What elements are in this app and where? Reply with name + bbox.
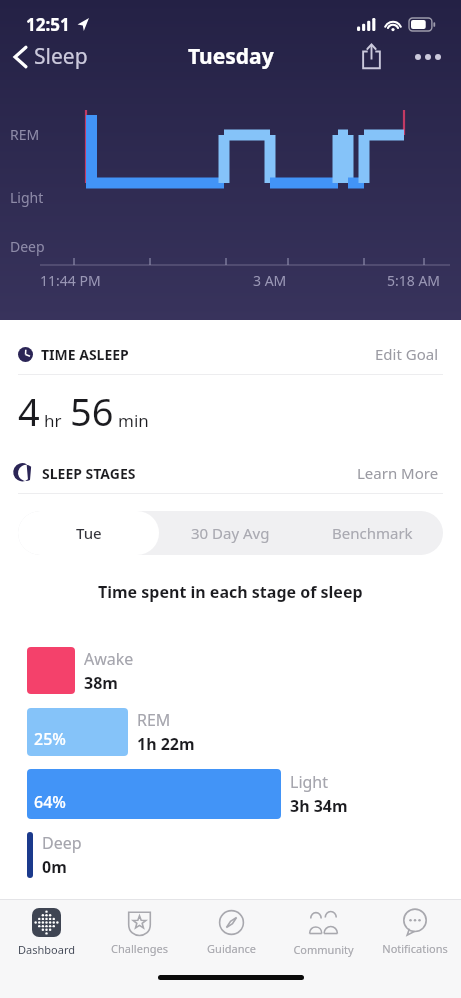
staticText: Notifications bbox=[382, 941, 448, 956]
button[interactable]: Learn More bbox=[353, 459, 443, 487]
staticText: Deep bbox=[10, 237, 45, 256]
staticText: hr bbox=[44, 409, 62, 432]
button[interactable]: 64% bbox=[27, 769, 281, 819]
staticText: Dashboard bbox=[18, 942, 75, 957]
button[interactable]: Guidance bbox=[185, 900, 277, 964]
button[interactable]: Share bbox=[352, 34, 391, 79]
staticText: 11:44 PM bbox=[40, 271, 101, 290]
button[interactable]: Tue bbox=[18, 511, 159, 555]
staticText: 1h 22m bbox=[137, 733, 195, 755]
staticText: Challenges bbox=[111, 941, 168, 956]
button[interactable]: Sleep bbox=[8, 34, 94, 79]
staticText: 30 Day Avg bbox=[191, 523, 270, 543]
button[interactable]: Edit Goal bbox=[371, 340, 443, 368]
staticText: Benchmark bbox=[332, 523, 413, 543]
staticText: 56 bbox=[70, 385, 114, 437]
staticText: Light bbox=[290, 771, 329, 793]
staticText: 3h 34m bbox=[290, 795, 348, 817]
staticText: 0m bbox=[42, 856, 67, 878]
staticText: 12:51 bbox=[26, 13, 70, 36]
staticText: 38m bbox=[84, 672, 118, 694]
staticText: 5:18 AM bbox=[387, 271, 441, 290]
button[interactable]: Community bbox=[277, 900, 369, 964]
button[interactable]: Challenges bbox=[93, 900, 185, 964]
button[interactable]: Benchmark bbox=[301, 511, 443, 555]
button[interactable]: Notifications bbox=[369, 900, 461, 964]
staticText: Tuesday bbox=[188, 42, 274, 71]
staticText: REM bbox=[137, 709, 171, 731]
staticText: Deep bbox=[42, 832, 82, 854]
staticText: Learn More bbox=[357, 463, 439, 483]
button[interactable] bbox=[27, 647, 75, 694]
button[interactable]: More options bbox=[405, 44, 451, 70]
staticText: 3 AM bbox=[253, 271, 287, 290]
staticText: Sleep bbox=[34, 42, 88, 71]
staticText: 25% bbox=[34, 728, 66, 750]
button[interactable]: 25% bbox=[27, 708, 128, 756]
button[interactable]: Dashboard bbox=[0, 900, 93, 964]
button[interactable] bbox=[27, 832, 33, 878]
staticText: TIME ASLEEP bbox=[41, 345, 129, 364]
staticText: REM bbox=[10, 125, 40, 144]
staticText: Light bbox=[10, 188, 44, 207]
staticText: SLEEP STAGES bbox=[42, 464, 136, 483]
staticText: Tue bbox=[76, 523, 102, 543]
staticText: Guidance bbox=[207, 941, 256, 956]
staticText: min bbox=[118, 409, 149, 432]
staticText: Awake bbox=[84, 648, 134, 670]
button[interactable]: 30 Day Avg bbox=[159, 511, 301, 555]
staticText: Community bbox=[293, 942, 354, 957]
staticText: 4 bbox=[18, 385, 40, 437]
staticText: Edit Goal bbox=[375, 344, 439, 364]
staticText: Time spent in each stage of sleep bbox=[98, 581, 363, 603]
staticText: 64% bbox=[34, 791, 66, 813]
